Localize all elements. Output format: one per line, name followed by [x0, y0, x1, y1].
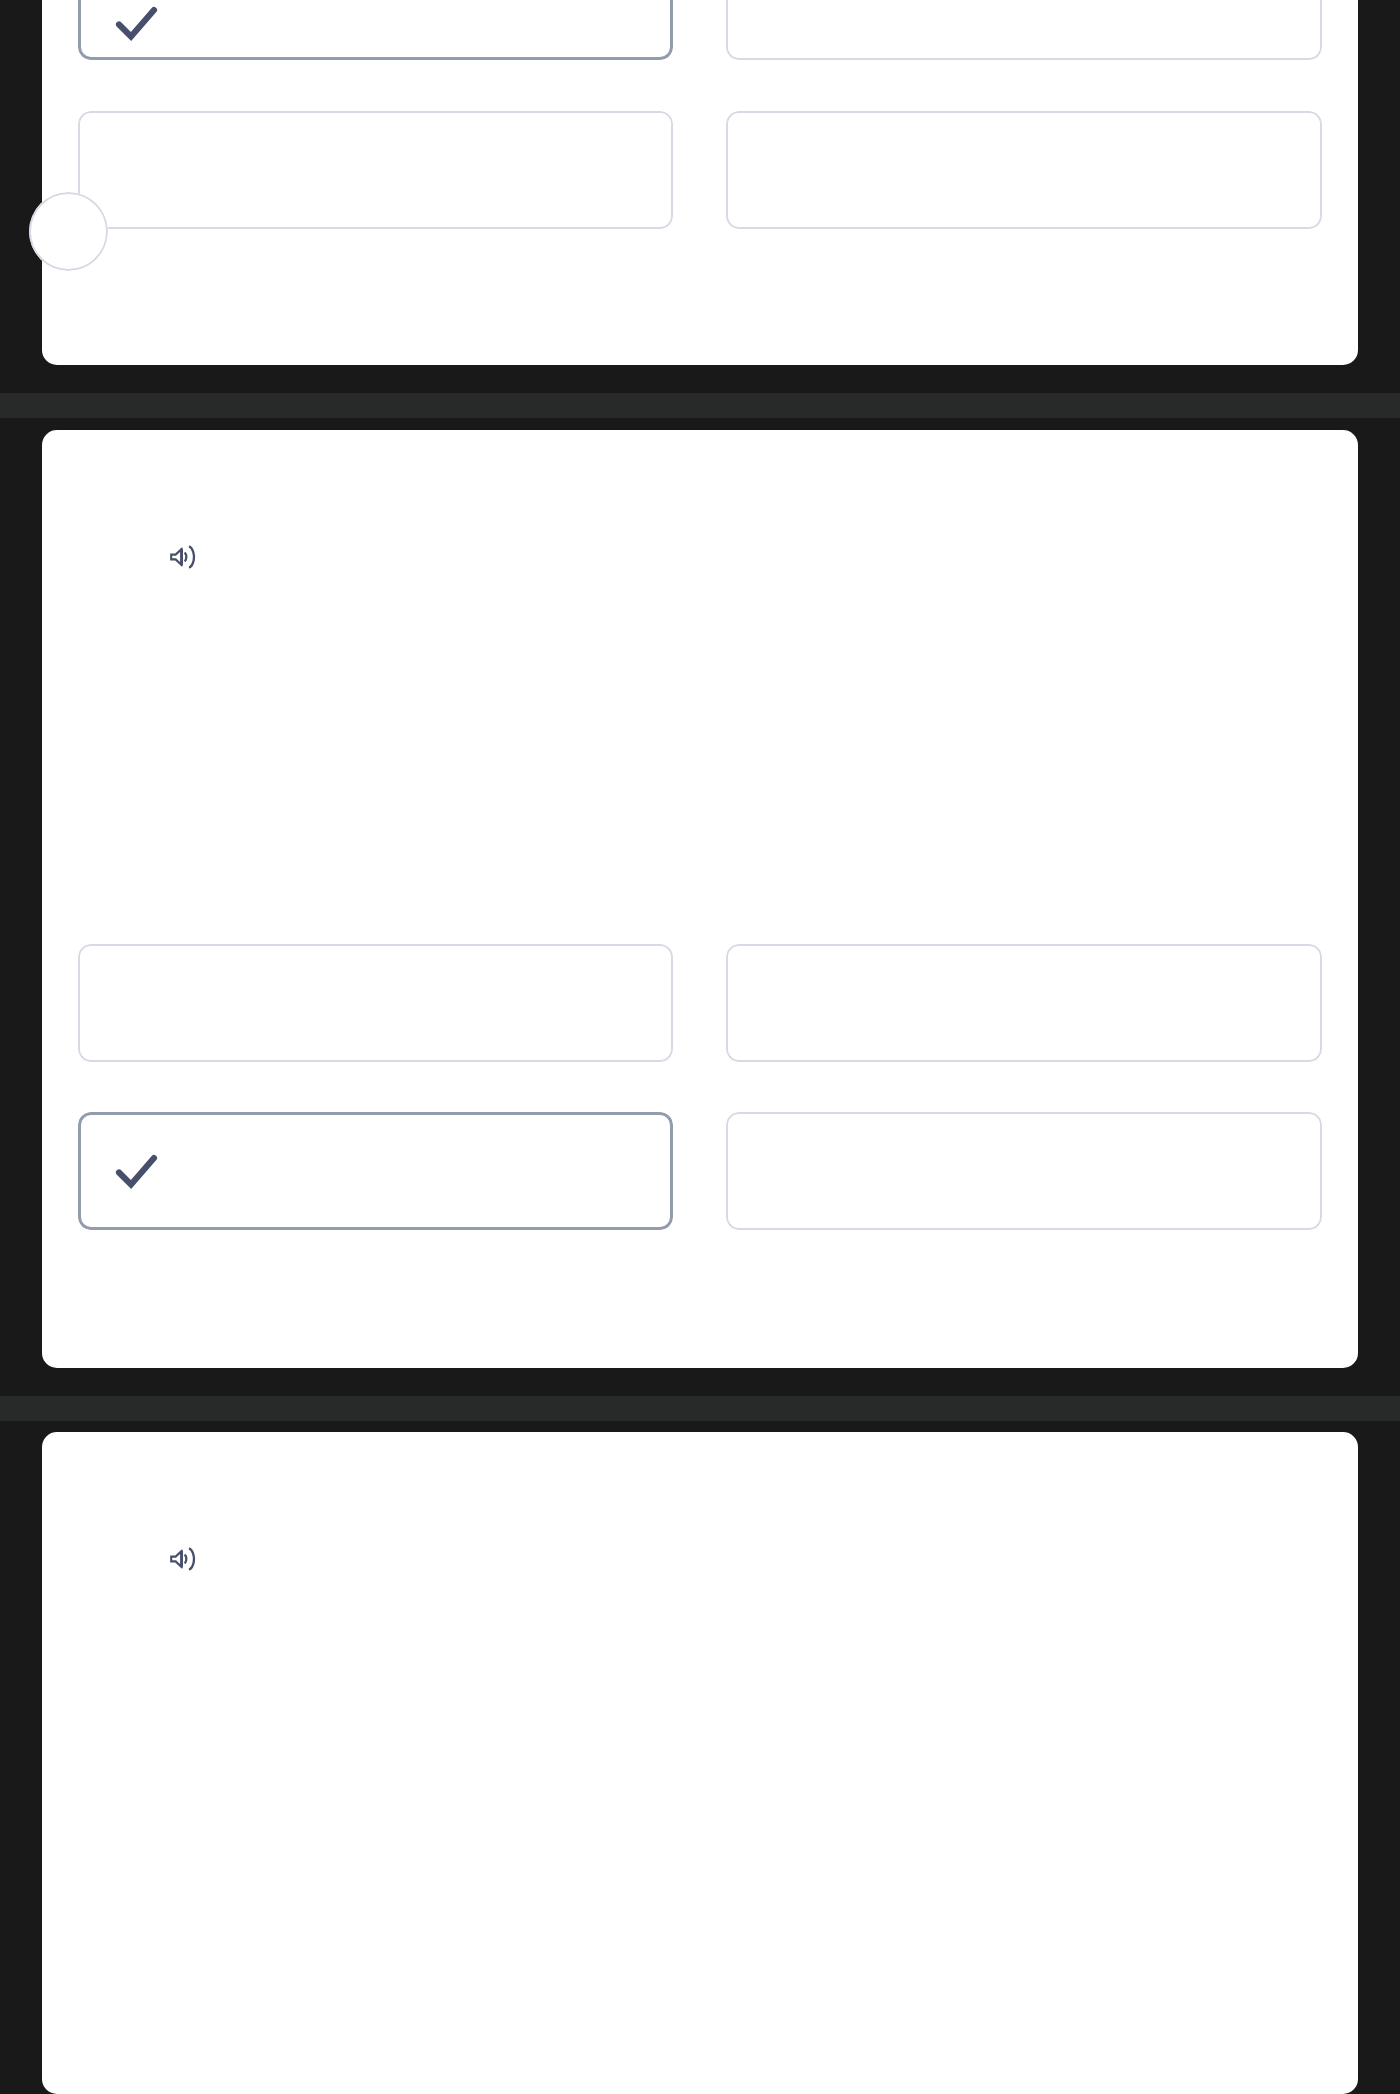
button[interactable]: Selected answer — [78, 0, 673, 60]
button[interactable]: Answer option — [78, 944, 673, 1062]
button[interactable]: Play audio — [170, 1547, 195, 1571]
button[interactable]: Play audio — [170, 545, 195, 569]
button[interactable]: Previous question — [29, 192, 108, 271]
button[interactable]: Answer option — [726, 1112, 1322, 1230]
button[interactable]: Answer option — [726, 0, 1322, 60]
button[interactable]: Selected answer — [78, 1112, 673, 1230]
button[interactable]: Answer option — [726, 111, 1322, 229]
button[interactable]: Answer option — [78, 111, 673, 229]
button[interactable]: Answer option — [726, 944, 1322, 1062]
